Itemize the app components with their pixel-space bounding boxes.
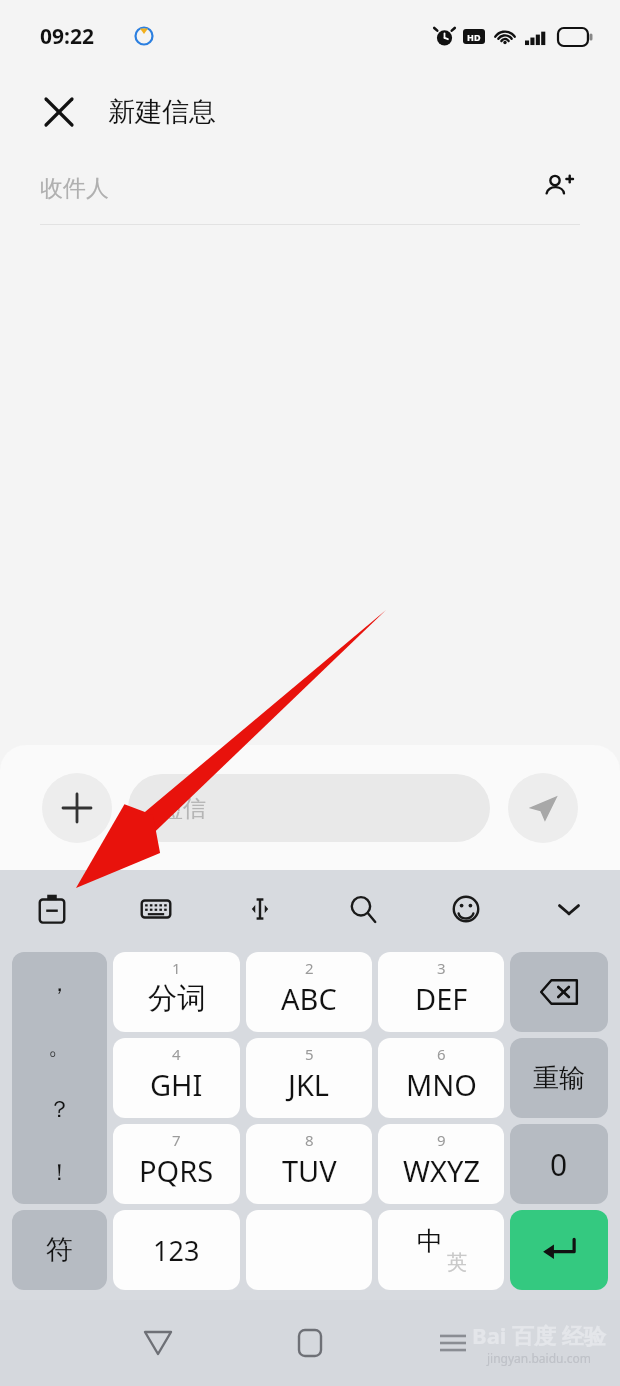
button[interactable]: 收件人	[40, 152, 580, 224]
button[interactable]: 6	[378, 1038, 504, 1118]
staticText: 1	[172, 958, 181, 978]
button[interactable]: Home	[284, 1317, 336, 1369]
button[interactable]: Close	[36, 89, 82, 135]
button[interactable]: 8	[246, 1124, 372, 1204]
staticText: WXYZ	[403, 1151, 480, 1190]
staticText: PQRS	[139, 1151, 214, 1190]
staticText: JKL	[288, 1065, 330, 1104]
staticText: 0	[550, 1144, 568, 1185]
staticText: 09:22	[40, 22, 94, 51]
button[interactable]: 4	[113, 1038, 240, 1118]
staticText: 收件人	[40, 174, 536, 203]
button[interactable]: 重输	[510, 1038, 608, 1118]
staticText: 7	[172, 1130, 181, 1150]
button[interactable]: ，	[12, 952, 107, 1015]
staticText: MNO	[406, 1065, 477, 1104]
staticText: ，	[48, 969, 71, 998]
staticText: ！	[48, 1158, 71, 1187]
button[interactable]: 1	[113, 952, 240, 1032]
staticText: TUV	[282, 1151, 337, 1190]
button[interactable]: 。	[12, 1015, 107, 1078]
staticText: 分词	[148, 980, 206, 1017]
button[interactable]: Switch Chinese English	[378, 1210, 504, 1290]
button[interactable]: Keyboard layout	[104, 870, 208, 948]
staticText: 重输	[533, 1062, 585, 1095]
staticText: 3	[437, 958, 446, 978]
button[interactable]: Space	[246, 1210, 372, 1290]
staticText: 短信	[160, 794, 206, 823]
button[interactable]: Search	[311, 870, 414, 948]
staticText: 4	[172, 1044, 181, 1064]
button[interactable]: Send	[508, 773, 578, 843]
staticText: 符	[46, 1233, 73, 1267]
button[interactable]: 5	[246, 1038, 372, 1118]
button[interactable]: 3	[378, 952, 504, 1032]
button[interactable]: 123	[113, 1210, 240, 1290]
staticText: HD	[467, 31, 481, 43]
staticText: 。	[48, 1032, 71, 1061]
button[interactable]: Backspace	[510, 952, 608, 1032]
button[interactable]: ！	[12, 1141, 107, 1204]
button[interactable]: Hide keyboard	[517, 870, 620, 948]
button[interactable]: 7	[113, 1124, 240, 1204]
button[interactable]: Attach	[42, 773, 112, 843]
button[interactable]: 短信	[128, 774, 490, 842]
button[interactable]: Emoji	[414, 870, 517, 948]
staticText: 2	[305, 958, 314, 978]
button[interactable]: 符	[12, 1210, 107, 1290]
staticText: Bai 百度 经验	[472, 1320, 606, 1350]
staticText: 新建信息	[108, 95, 216, 129]
staticText: DEF	[415, 979, 468, 1018]
staticText: GHI	[150, 1065, 203, 1104]
staticText: jingyan.baidu.com	[487, 1350, 591, 1366]
button[interactable]: Enter	[510, 1210, 608, 1290]
button[interactable]: 9	[378, 1124, 504, 1204]
button[interactable]: ？	[12, 1078, 107, 1141]
staticText: 8	[305, 1130, 314, 1150]
staticText: 英	[447, 1250, 467, 1275]
button[interactable]: 2	[246, 952, 372, 1032]
staticText: ABC	[281, 979, 337, 1018]
staticText: 9	[437, 1130, 446, 1150]
button[interactable]: Cursor move	[208, 870, 311, 948]
staticText: ？	[48, 1095, 71, 1124]
staticText: 中	[417, 1225, 443, 1258]
button[interactable]: Clipboard	[0, 870, 104, 948]
staticText: 6	[437, 1044, 446, 1064]
button[interactable]: 0	[510, 1124, 608, 1204]
button[interactable]: Add contact	[536, 166, 580, 210]
button[interactable]: Back	[132, 1317, 184, 1369]
staticText: 5	[305, 1044, 314, 1064]
staticText: 123	[153, 1232, 200, 1269]
